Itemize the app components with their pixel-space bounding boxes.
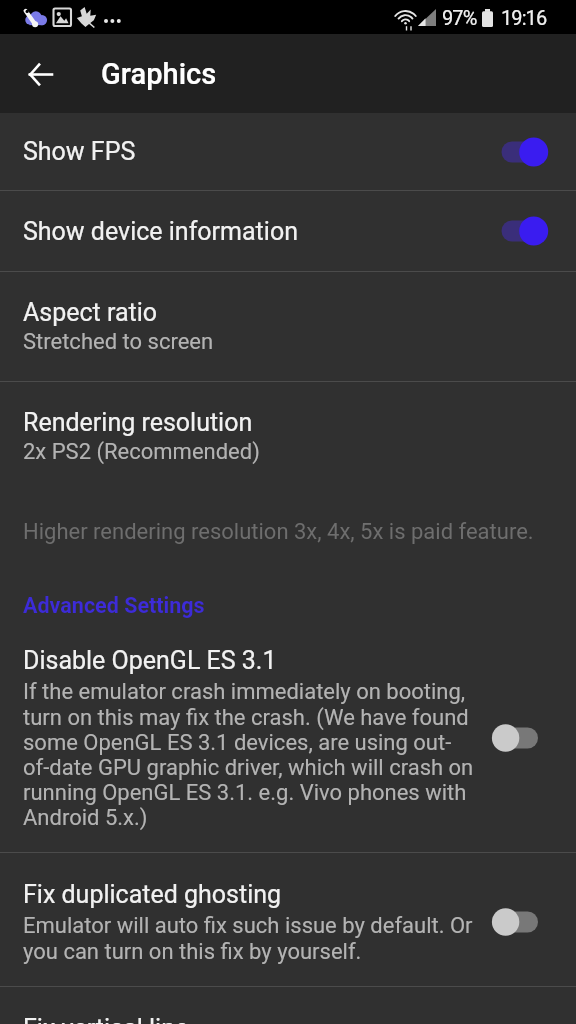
staticText: Fix vertical line xyxy=(23,1014,189,1024)
button[interactable]: Back xyxy=(12,46,68,102)
staticText: Graphics xyxy=(101,57,217,91)
staticText: Stretched to screen xyxy=(23,329,214,355)
staticText: Aspect ratio xyxy=(23,298,158,327)
staticText: 97% xyxy=(442,6,477,29)
staticText: Rendering resolution xyxy=(23,408,253,437)
staticText: 19:16 xyxy=(501,6,547,29)
button[interactable]: Fix duplicated ghosting xyxy=(0,853,576,986)
staticText: Fix duplicated ghosting xyxy=(23,880,282,909)
button[interactable]: Show device information xyxy=(0,191,576,271)
button[interactable]: Fix vertical line xyxy=(0,987,576,1024)
staticText: Advanced Settings xyxy=(23,593,205,618)
button[interactable]: Disable OpenGL ES 3.1 xyxy=(0,619,576,852)
staticText: Disable OpenGL ES 3.1 xyxy=(23,646,277,675)
button[interactable]: Aspect ratio xyxy=(0,272,576,381)
staticText: 2x PS2 (Recommended) xyxy=(23,439,260,465)
button[interactable]: Show FPS xyxy=(0,113,576,190)
staticText: Show device information xyxy=(23,217,492,246)
button[interactable]: Advanced Settings xyxy=(0,593,576,618)
staticText: Emulator will auto fix such issue by def… xyxy=(23,913,476,964)
staticText: Show FPS xyxy=(23,137,492,166)
staticText: Higher rendering resolution 3x, 4x, 5x i… xyxy=(23,519,534,545)
button[interactable]: Rendering resolution xyxy=(0,382,576,491)
staticText: If the emulator crash immediately on boo… xyxy=(23,679,476,830)
